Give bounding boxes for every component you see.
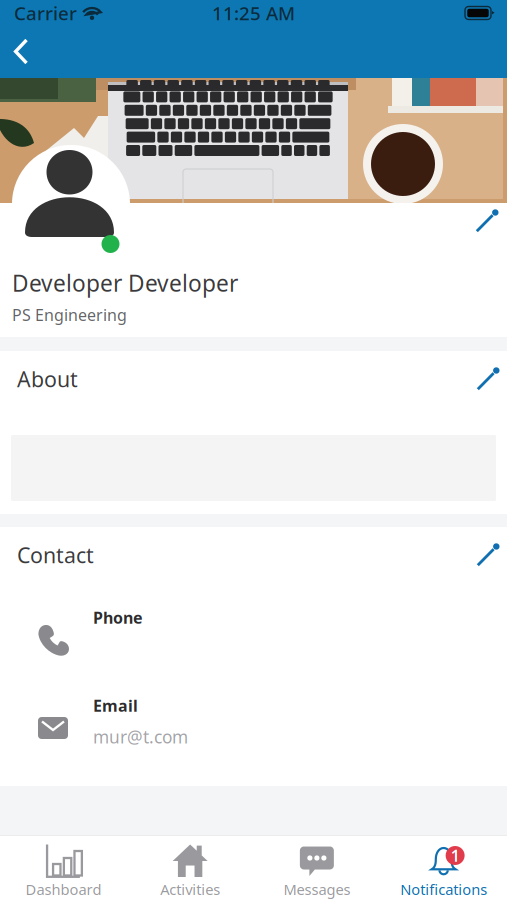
staticText: About (17, 365, 78, 393)
button[interactable]: Messages (253, 836, 380, 900)
button[interactable]: Edit About (464, 357, 507, 401)
button[interactable]: Dashboard (0, 836, 127, 900)
button[interactable]: Edit Contact (464, 533, 507, 577)
staticText: Activities (160, 879, 220, 899)
staticText: Developer Developer (12, 268, 238, 298)
staticText: Carrier (14, 1, 77, 25)
staticText: Dashboard (25, 879, 101, 899)
staticText: Contact (17, 541, 94, 569)
staticText: Email (93, 695, 138, 716)
staticText: Notifications (400, 879, 487, 899)
button[interactable]: Activities (127, 836, 254, 900)
button[interactable]: Back (0, 26, 45, 77)
staticText: Phone (93, 607, 143, 628)
staticText: 11:25 AM (212, 1, 295, 25)
staticText: PS Engineering (12, 304, 127, 325)
staticText: 1 (451, 845, 460, 866)
staticText: Messages (283, 879, 350, 899)
staticText: mur@t.com (93, 725, 188, 748)
button[interactable]: Edit profile (462, 203, 507, 239)
button[interactable]: 1 (380, 836, 507, 900)
